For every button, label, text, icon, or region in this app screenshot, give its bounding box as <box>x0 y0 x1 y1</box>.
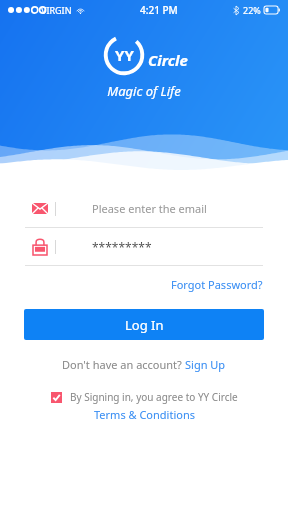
staticText: By Signing in, you agree to YY Circle <box>70 390 238 404</box>
staticText: Sign Up <box>185 357 226 372</box>
staticText: ********* <box>92 239 152 255</box>
button[interactable]: Agree to terms checkbox <box>51 392 62 403</box>
button[interactable]: Email <box>25 190 263 227</box>
staticText: Circle <box>148 50 188 70</box>
staticText: YY <box>115 45 134 65</box>
other: Email <box>32 203 48 214</box>
other: Password <box>33 238 47 255</box>
button[interactable]: Forgot Password? <box>0 277 263 292</box>
button[interactable]: Log In <box>24 309 264 340</box>
staticText: Terms & Conditions <box>94 407 195 422</box>
staticText: 22% <box>243 4 261 16</box>
button[interactable]: Don't have an account? <box>62 357 226 372</box>
button[interactable]: Terms & Conditions <box>94 407 195 422</box>
staticText: 4:21 PM <box>140 3 178 17</box>
staticText: Log In <box>125 316 164 334</box>
staticText: VIRGIN <box>41 4 72 16</box>
staticText: Please enter the email <box>92 201 207 216</box>
staticText: Don't have an account? <box>62 357 185 372</box>
staticText: Magic of Life <box>107 82 181 100</box>
staticText: Forgot Password? <box>171 277 263 292</box>
button[interactable]: Password <box>25 228 263 265</box>
